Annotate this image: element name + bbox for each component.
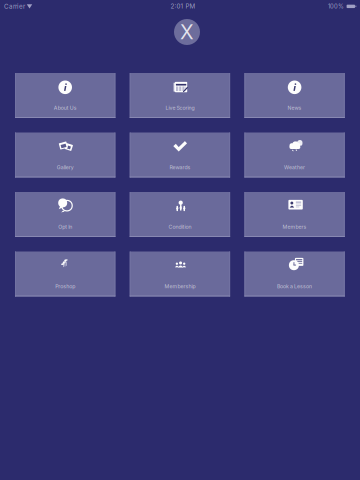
staticText: 2:01 PM <box>170 2 195 10</box>
button[interactable]: Rewards <box>130 132 230 177</box>
staticText: Membership <box>164 283 195 290</box>
staticText: X <box>180 20 194 44</box>
staticText: Live Scoring <box>165 105 194 111</box>
button[interactable]: Weather <box>244 132 345 177</box>
staticText: Weather <box>284 164 305 171</box>
button[interactable]: Members <box>244 192 345 237</box>
staticText: Members <box>283 224 307 230</box>
staticText: Condition <box>168 224 191 230</box>
staticText: Gallery <box>57 164 74 171</box>
staticText: Carrier <box>4 3 25 10</box>
staticText: About Us <box>54 105 77 111</box>
staticText: Proshop <box>55 283 75 290</box>
button[interactable]: About Us <box>15 73 115 118</box>
button[interactable]: News <box>244 73 345 118</box>
button[interactable]: Condition <box>130 192 230 237</box>
button[interactable]: Proshop <box>15 251 115 296</box>
staticText: Book a Lesson <box>277 283 312 290</box>
button[interactable]: Close <box>174 19 200 45</box>
button[interactable]: Book a Lesson <box>244 251 345 296</box>
button[interactable]: Opt In <box>15 192 115 237</box>
staticText: News <box>288 105 302 111</box>
staticText: Opt In <box>58 224 72 230</box>
staticText: 100% <box>328 3 344 10</box>
staticText: Rewards <box>169 164 190 171</box>
button[interactable]: Gallery <box>15 132 115 177</box>
button[interactable]: Membership <box>130 251 230 296</box>
button[interactable]: Live Scoring <box>130 73 230 118</box>
